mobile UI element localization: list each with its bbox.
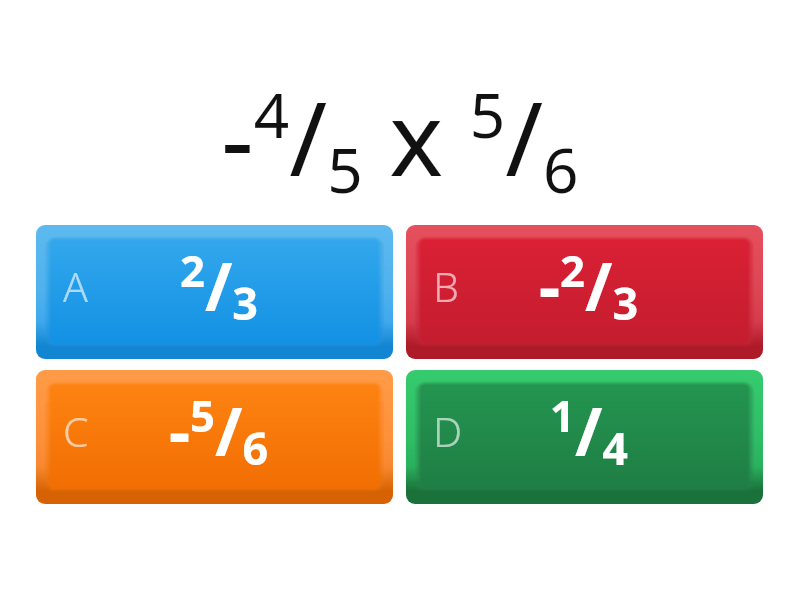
- staticText: D: [433, 403, 463, 459]
- staticText: -2/3: [539, 240, 639, 333]
- button[interactable]: C: [36, 370, 393, 504]
- staticText: A: [63, 258, 88, 314]
- staticText: 1/4: [550, 385, 628, 478]
- staticText: B: [433, 258, 459, 314]
- staticText: C: [63, 403, 89, 459]
- staticText: -4/5 x 5/6: [221, 67, 579, 211]
- staticText: -5/6: [169, 385, 269, 478]
- button[interactable]: A: [36, 225, 393, 359]
- button[interactable]: D: [406, 370, 763, 504]
- staticText: 2/3: [180, 240, 258, 333]
- button[interactable]: B: [406, 225, 763, 359]
